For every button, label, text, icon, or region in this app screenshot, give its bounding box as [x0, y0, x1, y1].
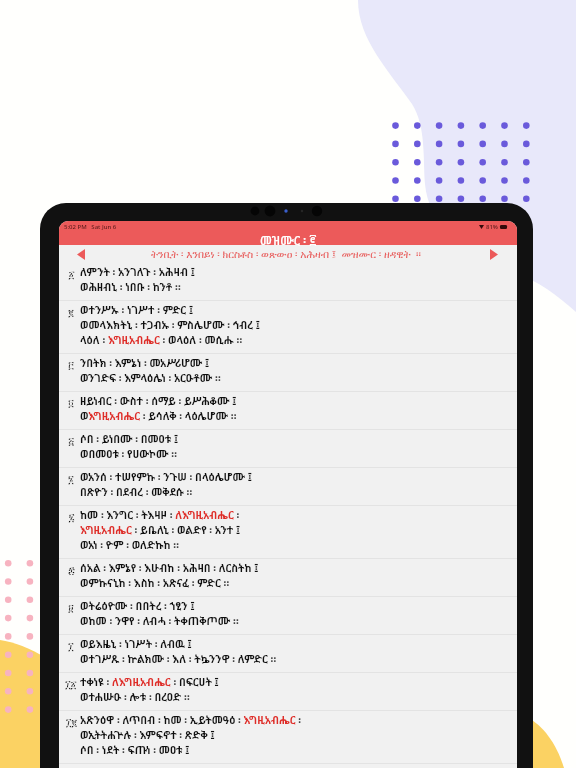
- staticText: ወይእዜኒ ፡ ነገሥት ፡ ለብዉ ፤ ወተገሥጹ ፡ ኵልክሙ ፡ እለ ፡…: [80, 637, 277, 666]
- staticText: ወአንሰ ፡ ተሠየምኩ ፡ ንጉሠ ፡ በላዕሌሆሙ ፤ በጽዮን ፡ በደብ…: [80, 470, 252, 499]
- button[interactable]: Previous chapter: [59, 245, 102, 263]
- staticText: ፲፪: [66, 718, 77, 728]
- staticText: ፭: [68, 437, 74, 447]
- staticText: ፲፩: [65, 680, 77, 690]
- button[interactable]: ፪: [59, 301, 517, 353]
- button[interactable]: ፰: [59, 559, 517, 596]
- staticText: ትንቢት ፡ እንበይነ ፡ ክርስቶስ ፡ ወጽውዐ ፡ አሕዛብ ፤ መዝሙ…: [151, 247, 421, 261]
- staticText: ለምንት ፡ አንገለጉ ፡ አሕዛብ ፤ ወሕዘብኒ ፡ ነበቡ ፡ ከንቶ …: [80, 265, 195, 294]
- staticText: 5:02 PM Sat Jun 6: [64, 223, 117, 231]
- staticText: ሰአል ፡ እምኔየ ፡ እሁብከ ፡ አሕዛበ ፡ ለርስትከ ፤ ወምኩናኒ…: [80, 561, 259, 590]
- staticText: ከመ ፡ እንግር ፡ ትእዛዞ ፡ ለእግዚአብሔር ፡ እግዚአብሔር ፡ …: [80, 508, 241, 552]
- staticText: ወትሬዕዮሙ ፡ በበትረ ፡ ኀፂን ፤ ወከመ ፡ ንዋየ ፡ ለብሓ ፡ …: [80, 599, 239, 628]
- staticText: ፲: [68, 642, 74, 652]
- staticText: ወተንሥኡ ፡ ነገሥተ ፡ ምድር ፤ ወመላእክትኒ ፡ ተጋብኡ ፡ ምስ…: [80, 303, 260, 347]
- staticText: ፬: [68, 399, 74, 409]
- button[interactable]: ፬: [59, 392, 517, 429]
- staticText: ፫: [68, 361, 74, 371]
- staticText: ፮: [68, 475, 74, 485]
- staticText: ፱: [68, 604, 74, 614]
- staticText: መዝሙር ፡ ፪: [260, 232, 317, 248]
- button[interactable]: ፱: [59, 597, 517, 634]
- staticText: ፰: [68, 566, 75, 576]
- staticText: 81%: [486, 223, 498, 231]
- staticText: ተቀነዩ ፡ ለእግዚአብሔር ፡ በፍርሀት ፤ ወተሐሡዑ ፡ ሎቱ ፡ በ…: [80, 675, 219, 704]
- button[interactable]: ፭: [59, 430, 517, 467]
- staticText: ፩: [68, 270, 75, 280]
- button[interactable]: ፮: [59, 468, 517, 505]
- button[interactable]: ፫: [59, 354, 517, 391]
- staticText: ፪: [68, 308, 74, 318]
- button[interactable]: ፲፪: [59, 711, 517, 763]
- staticText: ዘይነብር ፡ ውስተ ፡ ሰማይ ፡ ይሥሕቆሙ ፤ ወእግዚአብሔር ፡ ይ…: [80, 394, 237, 423]
- button[interactable]: ፲: [59, 635, 517, 672]
- staticText: አጽንዕዋ ፡ ለጥበብ ፡ ከመ ፡ ኢይትመዓዕ ፡ እግዚአብሔር ፡ ወ…: [80, 713, 301, 757]
- button[interactable]: Next chapter: [470, 245, 517, 263]
- button[interactable]: ፲፩: [59, 673, 517, 710]
- button[interactable]: ፩: [59, 263, 517, 300]
- staticText: ፯: [68, 513, 75, 523]
- staticText: ሶበ ፡ ይነበሙ ፡ በመዐቱ ፤ ወበመዐቱ ፡ የሀውኮሙ ።: [80, 432, 179, 461]
- button[interactable]: ፯: [59, 506, 517, 558]
- staticText: ንበትክ ፡ እምኔነ ፡ መአሥሪሆሙ ፤ ወንገድፍ ፡ እምላዕሌነ ፡ …: [80, 356, 221, 385]
